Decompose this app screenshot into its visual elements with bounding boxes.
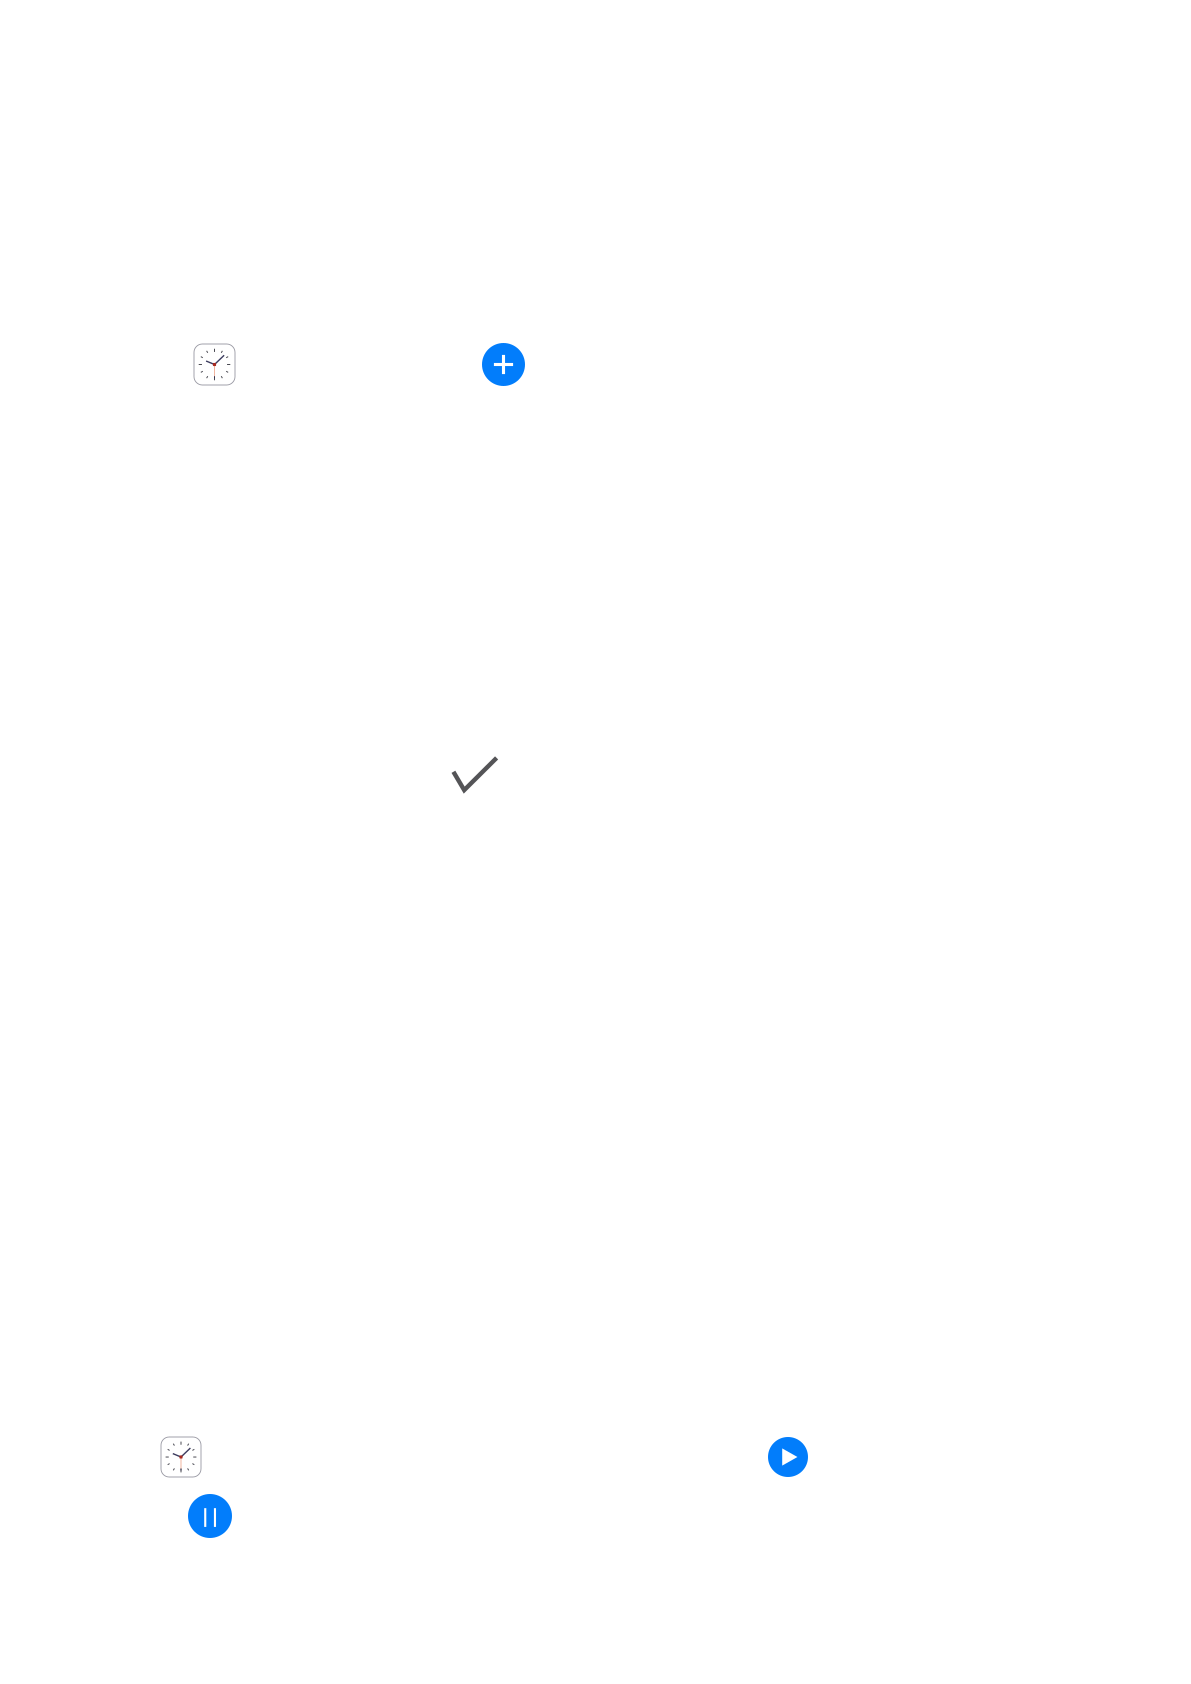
button[interactable]: Pause timer: [188, 1494, 232, 1538]
button[interactable]: Add timer: [482, 343, 525, 386]
button[interactable]: Timer: [161, 1437, 292, 1477]
button[interactable]: Start timer: [768, 1437, 808, 1477]
